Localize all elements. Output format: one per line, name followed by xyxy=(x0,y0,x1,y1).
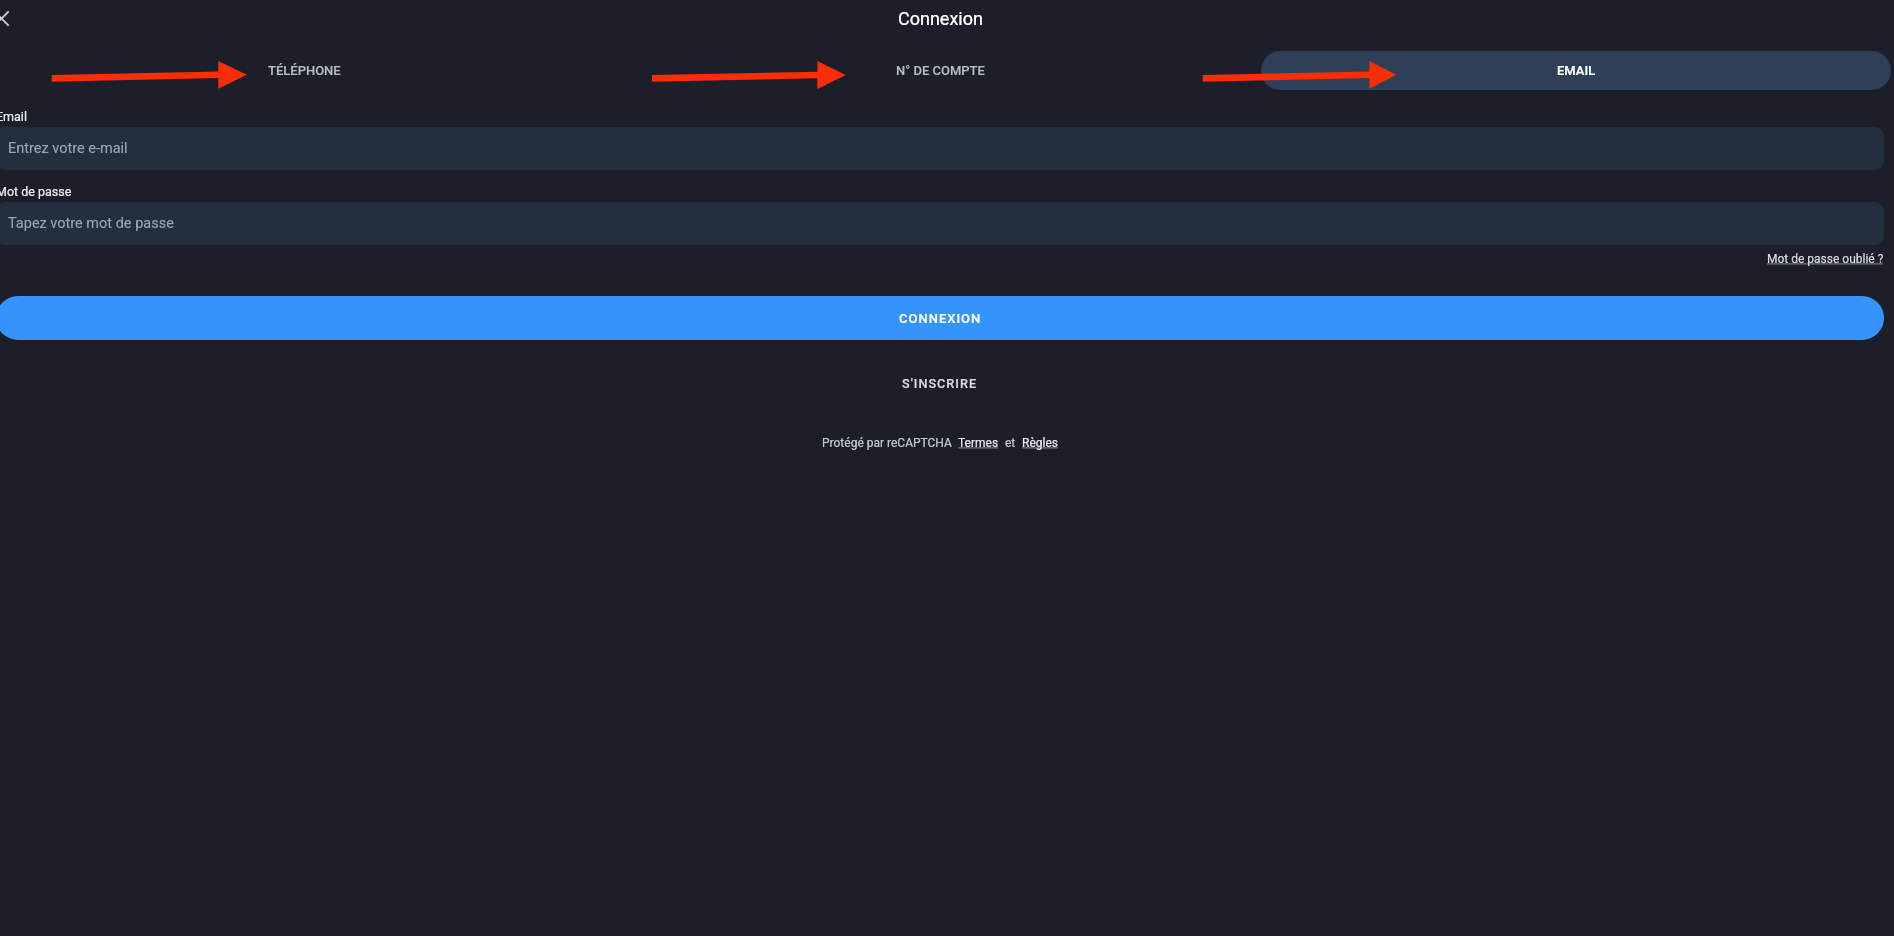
button[interactable]: S'INSCRIRE xyxy=(0,361,1884,405)
button[interactable]: TÉLÉPHONE xyxy=(0,51,619,90)
staticText: EMAIL xyxy=(1557,63,1596,78)
staticText: Tapez votre mot de passe xyxy=(8,215,174,232)
button[interactable]: Entrez votre e-mail xyxy=(0,127,1884,170)
staticText: Termes xyxy=(958,436,999,450)
staticText: Email xyxy=(0,109,27,124)
button[interactable]: Close xyxy=(0,0,20,37)
staticText: CONNEXION xyxy=(899,311,982,326)
staticText: Connexion xyxy=(898,8,983,29)
staticText: Protégé par reCAPTCHA xyxy=(822,436,952,450)
button[interactable]: Tapez votre mot de passe xyxy=(0,202,1884,245)
staticText: S'INSCRIRE xyxy=(902,376,978,391)
staticText: et xyxy=(1005,436,1016,450)
button[interactable]: Règles xyxy=(1022,436,1058,450)
button[interactable]: Mot de passe oublié ? xyxy=(1767,252,1884,266)
staticText: N° DE COMPTE xyxy=(896,63,985,78)
button[interactable]: Termes xyxy=(958,436,999,450)
staticText: Mot de passe oublié ? xyxy=(1767,252,1884,266)
button[interactable]: CONNEXION xyxy=(0,296,1884,340)
button[interactable]: N° DE COMPTE xyxy=(625,51,1255,90)
button[interactable]: EMAIL xyxy=(1261,51,1891,90)
staticText: Mot de passe xyxy=(0,184,72,199)
staticText: TÉLÉPHONE xyxy=(268,63,341,78)
staticText: Entrez votre e-mail xyxy=(8,140,128,157)
staticText: Règles xyxy=(1022,436,1058,450)
